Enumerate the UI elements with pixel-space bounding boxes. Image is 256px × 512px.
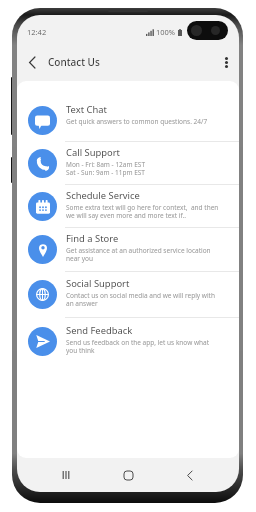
button[interactable]: Recents (53, 462, 79, 488)
staticText: Send Feedback (66, 324, 133, 337)
staticText: Contact us on social media and we will r… (66, 291, 219, 308)
staticText: Text Chat (66, 103, 107, 116)
staticText: Find a Store (66, 232, 119, 245)
button[interactable]: More options (216, 52, 236, 72)
button[interactable]: Call Support (17, 142, 239, 184)
staticText: Get quick answers to common questions. 2… (66, 117, 208, 126)
staticText: Some extra text will go here for context… (66, 203, 219, 220)
button[interactable]: Back (22, 52, 42, 72)
button[interactable]: Send Feedback (17, 318, 239, 364)
button[interactable]: Text Chat (17, 100, 239, 141)
staticText: Schedule Service (66, 189, 140, 202)
staticText: Contact Us (48, 55, 100, 69)
button[interactable]: Home (115, 462, 141, 488)
staticText: Mon - Fri: 8am - 12am EST Sat - Sun: 9am… (66, 160, 146, 177)
staticText: Get assistance at an authorized service … (66, 246, 219, 263)
staticText: Send us feedback on the app, let us know… (66, 338, 219, 355)
staticText: 12:42 (27, 27, 47, 37)
button[interactable]: Social Support (17, 272, 239, 317)
staticText: 100% (156, 27, 176, 37)
button[interactable]: Schedule Service (17, 185, 239, 227)
button[interactable]: Back (177, 462, 203, 488)
staticText: Call Support (66, 146, 120, 159)
staticText: Social Support (66, 277, 130, 290)
button[interactable]: Find a Store (17, 228, 239, 271)
